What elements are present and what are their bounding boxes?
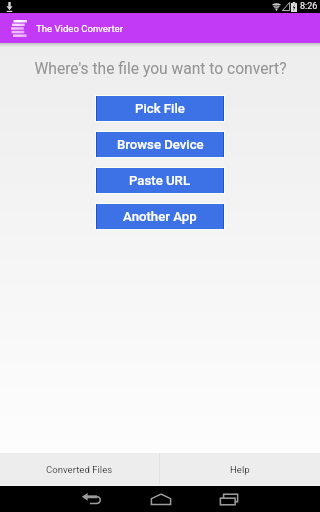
button[interactable]: Navigation menu <box>11 20 27 37</box>
button[interactable]: Help <box>160 453 320 485</box>
staticText: 8:26 <box>300 1 318 12</box>
button[interactable]: Back <box>72 486 112 512</box>
button[interactable]: Converted Files <box>0 453 159 485</box>
staticText: Paste URL <box>129 173 191 188</box>
staticText: Where's the file you want to convert? <box>34 60 287 78</box>
staticText: Another App <box>123 209 197 224</box>
staticText: Converted Files <box>46 464 113 475</box>
staticText: The Video Converter <box>36 23 123 34</box>
button[interactable]: Browse Device <box>96 132 224 157</box>
button[interactable]: Recent apps <box>209 486 249 512</box>
button[interactable]: Another App <box>96 204 224 229</box>
button[interactable]: Paste URL <box>96 168 224 193</box>
staticText: Pick File <box>135 101 185 116</box>
staticText: Help <box>230 464 250 475</box>
button[interactable]: Home <box>141 486 181 512</box>
staticText: Browse Device <box>117 137 204 152</box>
button[interactable]: Pick File <box>96 96 224 121</box>
